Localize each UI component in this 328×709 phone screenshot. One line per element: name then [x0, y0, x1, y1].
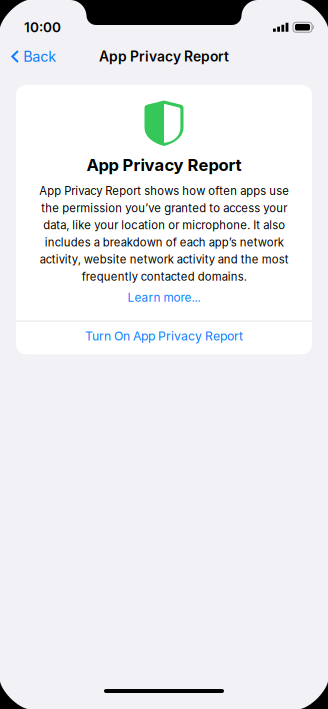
- staticText: 10:00: [24, 19, 61, 35]
- button[interactable]: Learn more...: [115, 285, 212, 310]
- button[interactable]: Turn On App Privacy Report: [16, 322, 312, 354]
- staticText: Back: [23, 48, 56, 65]
- staticText: Turn On App Privacy Report: [85, 329, 243, 343]
- button[interactable]: Back: [0, 41, 66, 72]
- staticText: App Privacy Report: [99, 48, 229, 65]
- staticText: App Privacy Report: [86, 155, 241, 175]
- staticText: App Privacy Report shows how often apps …: [39, 184, 289, 283]
- staticText: Learn more...: [127, 290, 200, 305]
